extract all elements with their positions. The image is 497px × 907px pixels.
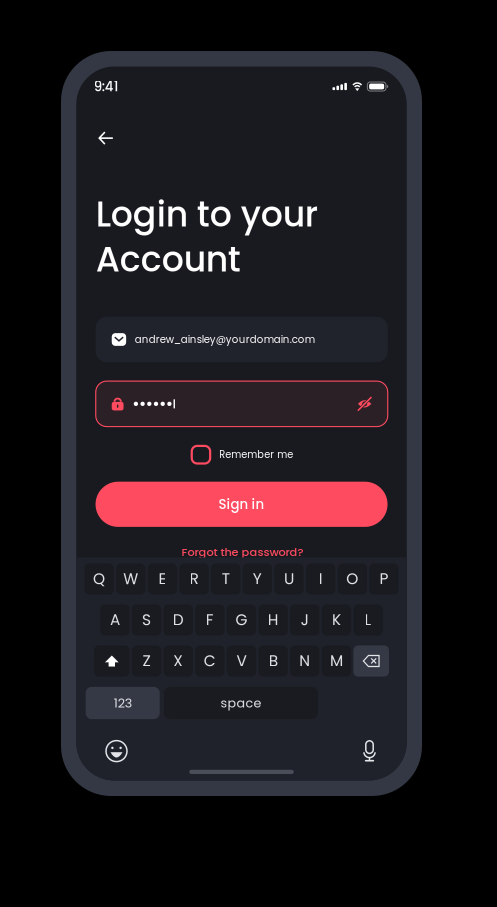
staticText: I [319, 568, 323, 590]
button[interactable]: Q [84, 563, 114, 595]
button[interactable]: Forgot the password? [181, 544, 303, 560]
button[interactable]: N [290, 645, 319, 677]
button[interactable]: K [322, 604, 351, 636]
button[interactable]: O [338, 563, 367, 595]
button[interactable]: V [227, 645, 256, 677]
button[interactable]: W [116, 563, 145, 595]
button[interactable]: R [179, 563, 209, 595]
staticText: S [142, 609, 151, 631]
staticText: Q [93, 568, 105, 590]
staticText: V [236, 650, 246, 672]
button[interactable]: D [163, 604, 193, 636]
staticText: P [379, 568, 388, 590]
button[interactable]: Shift [94, 645, 130, 677]
staticText: J [301, 609, 309, 631]
button[interactable]: G [227, 604, 256, 636]
staticText: E [158, 568, 166, 590]
staticText: H [268, 609, 279, 631]
staticText: U [284, 568, 294, 590]
button[interactable]: B [258, 645, 288, 677]
button[interactable]: 123 [86, 687, 160, 719]
button[interactable]: I [306, 563, 335, 595]
staticText: K [332, 609, 341, 631]
staticText: O [346, 568, 358, 590]
staticText: Login to your [96, 190, 318, 238]
button[interactable]: P [369, 563, 399, 595]
button[interactable]: T [211, 563, 240, 595]
button[interactable]: S [132, 604, 161, 636]
button[interactable]: H [258, 604, 288, 636]
button[interactable]: U [274, 563, 304, 595]
staticText: 123 [114, 694, 132, 712]
button[interactable]: Emoji [105, 740, 127, 762]
button[interactable]: A [100, 604, 130, 636]
button[interactable]: Z [132, 645, 161, 677]
staticText: Z [142, 650, 150, 672]
staticText: B [269, 650, 278, 672]
staticText: T [222, 568, 230, 590]
staticText: L [365, 609, 372, 631]
staticText: Account [96, 235, 241, 284]
staticText: X [173, 650, 183, 672]
button[interactable]: Backspace [353, 645, 389, 677]
button[interactable]: F [195, 604, 224, 636]
staticText: R [189, 568, 198, 590]
button[interactable]: X [163, 645, 193, 677]
button[interactable]: Remember me [192, 446, 293, 463]
staticText: A [110, 609, 120, 631]
button[interactable]: E [148, 563, 177, 595]
staticText: N [299, 650, 310, 672]
staticText: Forgot the password? [181, 544, 303, 560]
staticText: andrew_ainsley@yourdomain.com [135, 332, 315, 347]
staticText: Y [253, 568, 262, 590]
button[interactable]: L [353, 604, 383, 636]
button[interactable]: Y [243, 563, 272, 595]
staticText: W [123, 568, 138, 590]
button[interactable]: Back [90, 123, 122, 153]
button[interactable]: Show password [358, 397, 372, 411]
staticText: Sign in [219, 495, 265, 514]
button[interactable]: J [290, 604, 319, 636]
button[interactable]: M [322, 645, 351, 677]
staticText: M [330, 650, 343, 672]
button[interactable]: C [195, 645, 224, 677]
staticText: 9:41 [94, 77, 119, 96]
staticText: space [220, 694, 261, 712]
staticText: C [204, 650, 216, 672]
button[interactable]: Sign in [95, 482, 387, 527]
button[interactable]: Dictate [361, 740, 377, 762]
staticText: D [173, 609, 184, 631]
staticText: F [206, 609, 214, 631]
button[interactable]: space [164, 687, 318, 719]
staticText: Remember me [219, 448, 293, 461]
staticText: G [235, 609, 247, 631]
